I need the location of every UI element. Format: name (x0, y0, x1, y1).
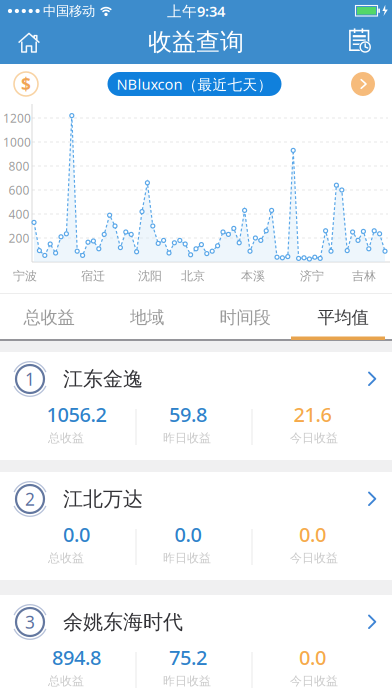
button[interactable]: 平均值 (294, 294, 392, 341)
staticText: 宁波 (13, 269, 37, 283)
staticText: NBluxcon（最近七天） (116, 74, 272, 94)
staticText: 昨日收益 (163, 431, 211, 445)
staticText: 59.8 (169, 401, 207, 428)
staticText: 1056.2 (46, 401, 106, 428)
staticText: 沈阳 (138, 269, 162, 283)
staticText: 江北万达 (63, 487, 143, 511)
staticText: 0.0 (299, 644, 326, 671)
staticText: 今日收益 (290, 674, 338, 688)
staticText: 0.0 (299, 521, 326, 548)
staticText: 总收益 (48, 431, 84, 445)
staticText: $ (21, 72, 31, 95)
staticText: 0.0 (174, 521, 201, 548)
staticText: 宿迁 (81, 269, 105, 283)
staticText: 21.6 (293, 401, 331, 428)
staticText: 894.8 (52, 644, 101, 671)
staticText: 本溪 (241, 269, 265, 283)
staticText: 平均值 (317, 307, 368, 328)
staticText: 75.2 (169, 644, 207, 671)
button[interactable] (0, 21, 58, 64)
staticText: 总收益 (23, 307, 74, 328)
button[interactable] (0, 21, 392, 64)
staticText: 1 (25, 367, 35, 390)
staticText: 800 (8, 158, 29, 174)
staticText: 200 (8, 230, 29, 246)
staticText: 总收益 (48, 674, 84, 688)
staticText: 今日收益 (290, 551, 338, 565)
staticText: 余姚东海时代 (63, 610, 183, 634)
button[interactable]: $ (0, 72, 38, 96)
staticText: 3 (25, 610, 35, 633)
staticText: 总收益 (48, 551, 84, 565)
button[interactable]: 时间段 (196, 294, 294, 341)
staticText: 吉林 (352, 269, 376, 283)
staticText: 今日收益 (290, 431, 338, 445)
staticText: 0.0 (63, 521, 90, 548)
button[interactable]: NBluxcon（最近七天） (107, 72, 281, 96)
staticText: 北京 (181, 269, 205, 283)
button[interactable]: 1 (0, 352, 392, 460)
staticText: 时间段 (219, 307, 270, 328)
button[interactable]: 2 (0, 472, 392, 580)
button[interactable] (351, 72, 392, 96)
staticText: 400 (8, 206, 29, 222)
staticText: 江东金逸 (63, 367, 143, 391)
staticText: 1000 (3, 134, 31, 150)
staticText: 昨日收益 (163, 674, 211, 688)
staticText: 地域 (130, 307, 164, 328)
button[interactable]: 地域 (98, 294, 196, 341)
staticText: 收益查询 (148, 27, 244, 57)
staticText: 昨日收益 (163, 551, 211, 565)
button[interactable]: 3 (0, 595, 392, 696)
staticText: 600 (8, 182, 29, 198)
button[interactable]: 总收益 (0, 294, 98, 341)
staticText: 上午9:34 (167, 1, 225, 21)
staticText: 济宁 (300, 269, 324, 283)
staticText: 2 (25, 487, 35, 510)
staticText: 中国移动 (43, 3, 95, 19)
staticText: 1200 (3, 110, 31, 126)
